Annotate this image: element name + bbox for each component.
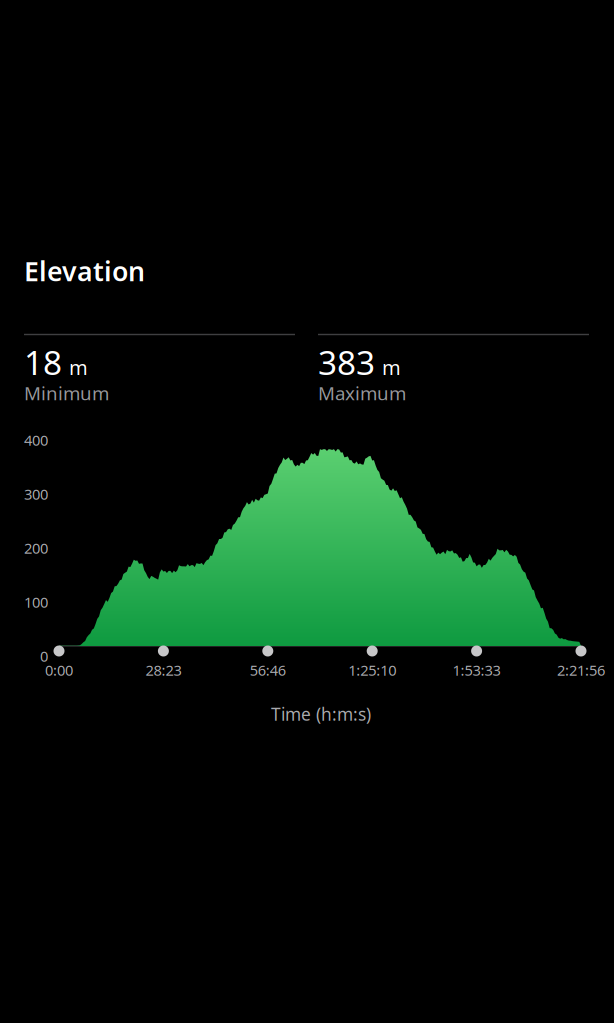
button[interactable]: Elevation chart, 18 to 383 metres	[59, 438, 581, 646]
staticText: 28:23	[145, 660, 181, 680]
staticText: 0:00	[45, 660, 73, 680]
staticText: 200	[24, 538, 48, 558]
staticText: 18	[24, 340, 62, 384]
staticText: 383	[318, 340, 375, 384]
staticText: m	[69, 354, 88, 380]
staticText: 300	[24, 484, 48, 504]
staticText: Minimum	[24, 381, 109, 405]
staticText: 0	[40, 646, 48, 666]
staticText: Time (h:m:s)	[271, 702, 371, 725]
staticText: 1:53:33	[453, 660, 501, 680]
staticText: Maximum	[318, 381, 406, 405]
staticText: 1:25:10	[348, 660, 396, 680]
staticText: 100	[24, 592, 48, 612]
staticText: 400	[24, 430, 48, 450]
staticText: Elevation	[24, 253, 145, 289]
staticText: m	[382, 354, 401, 380]
staticText: 56:46	[250, 660, 286, 680]
staticText: 2:21:56	[557, 660, 605, 680]
